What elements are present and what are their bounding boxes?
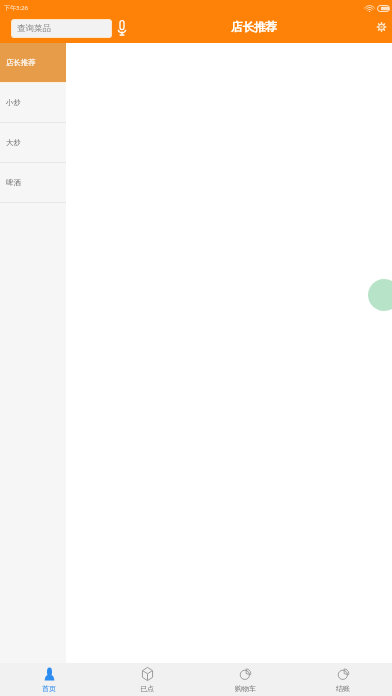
button[interactable]: 购物车 — [196, 663, 294, 696]
staticText: 大炒 — [6, 138, 21, 147]
staticText: 查询菜品 — [17, 23, 51, 34]
button[interactable]: 小炒 — [0, 83, 66, 123]
staticText: 店长推荐 — [231, 20, 277, 34]
staticText: 结账 — [336, 684, 350, 693]
button[interactable]: 首页 — [0, 663, 98, 696]
staticText: 啤酒 — [6, 178, 21, 187]
button[interactable]: 语音输入 — [112, 14, 131, 42]
staticText: 已点 — [140, 684, 154, 693]
button[interactable]: 啤酒 — [0, 163, 66, 203]
button[interactable]: 大炒 — [0, 123, 66, 163]
staticText: 下午3:26 — [4, 4, 28, 12]
staticText: 店长推荐 — [6, 58, 36, 67]
button[interactable]: 添加 — [368, 279, 392, 311]
button[interactable]: 已点 — [98, 663, 196, 696]
button[interactable]: 结账 — [294, 663, 392, 696]
button[interactable]: 查询菜品 — [11, 19, 112, 38]
staticText: 首页 — [42, 684, 56, 693]
staticText: 购物车 — [235, 684, 256, 693]
button[interactable]: 设置 — [371, 14, 392, 42]
staticText: 小炒 — [6, 98, 21, 107]
button[interactable]: 店长推荐 — [0, 43, 66, 83]
